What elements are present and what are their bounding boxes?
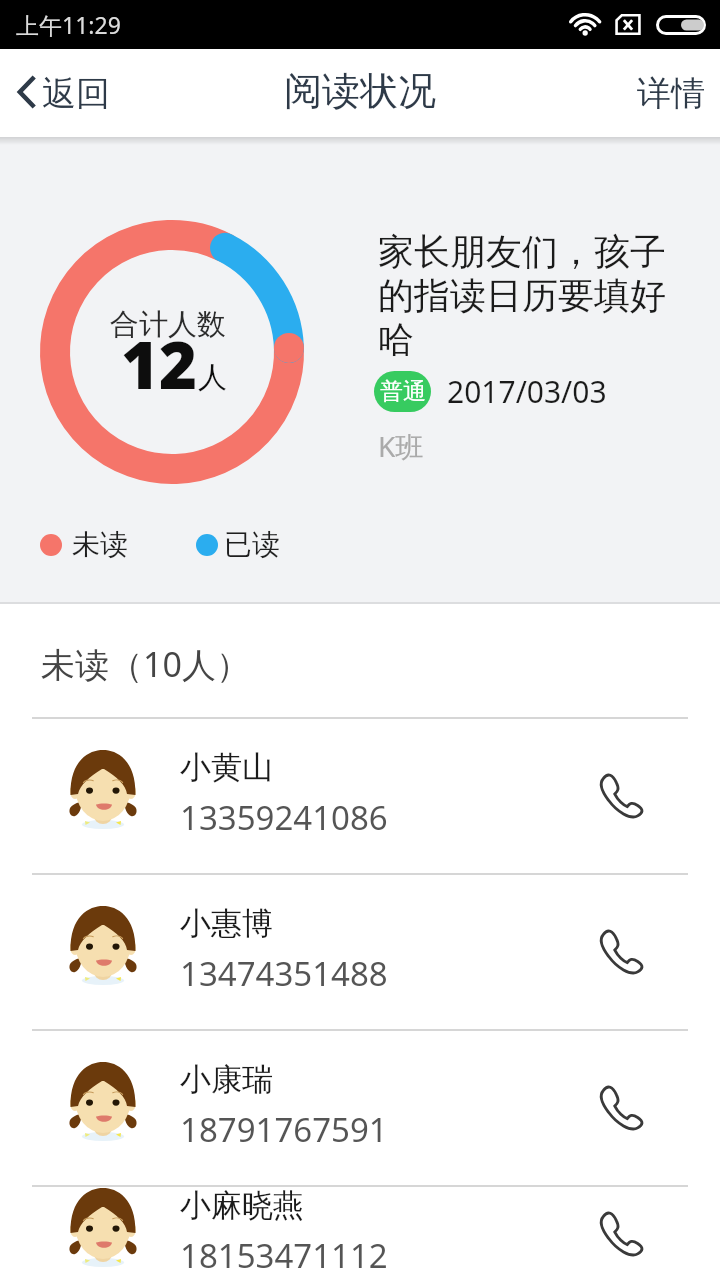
button[interactable]: 小麻晓燕	[0, 1187, 720, 1280]
staticText: 未读（10人）	[41, 641, 250, 687]
button[interactable]: 详情	[619, 58, 720, 129]
button[interactable]: Call	[572, 1060, 668, 1156]
button[interactable]: 小惠博	[0, 875, 720, 1029]
staticText: 阅读状况	[284, 67, 436, 115]
staticText: 2017/03/03	[447, 371, 607, 412]
staticText: 未读	[72, 527, 128, 562]
staticText: 家长朋友们，孩子的指读日历要填好哈	[378, 229, 678, 363]
staticText: 已读	[224, 527, 280, 562]
button[interactable]: Call	[572, 1187, 668, 1280]
staticText: 小麻晓燕	[180, 1186, 304, 1225]
staticText: K班	[378, 427, 424, 465]
staticText: 18791767591	[180, 1107, 388, 1152]
staticText: 13474351488	[180, 951, 388, 996]
staticText: 普通	[380, 377, 426, 406]
staticText: 18153471112	[180, 1233, 388, 1278]
button[interactable]: Call	[572, 748, 668, 844]
staticText: 12	[121, 320, 198, 409]
button[interactable]: Back	[0, 62, 126, 125]
staticText: 上午11:29	[16, 9, 121, 40]
staticText: 13359241086	[180, 795, 388, 840]
staticText: 小惠博	[180, 904, 273, 943]
staticText: 人	[198, 359, 227, 396]
staticText: 合计人数	[110, 306, 226, 343]
staticText: 小康瑞	[180, 1060, 273, 1099]
staticText: 返回	[42, 72, 110, 115]
button[interactable]: 小黄山	[0, 719, 720, 873]
button[interactable]: 小康瑞	[0, 1031, 720, 1185]
button[interactable]: Call	[572, 904, 668, 1000]
staticText: 小黄山	[180, 748, 273, 787]
